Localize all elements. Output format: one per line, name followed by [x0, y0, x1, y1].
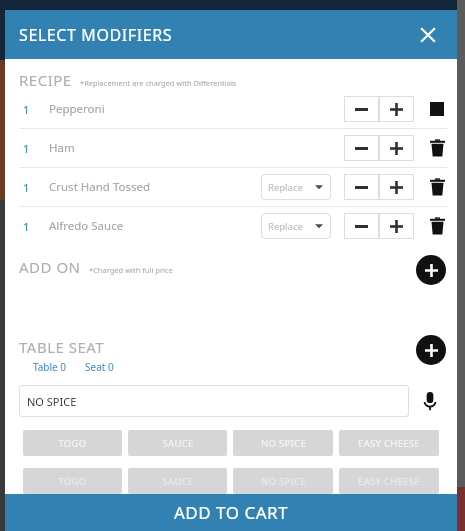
staticText: Ham — [49, 140, 75, 156]
button[interactable]: Voice input — [417, 388, 443, 414]
staticText: 1 — [23, 180, 30, 195]
staticText: Replace — [268, 181, 303, 194]
staticText: 1 — [23, 141, 30, 156]
button[interactable]: Delete Crust Hand Tossed — [427, 174, 447, 200]
button[interactable]: SELECT MODIFIERS — [5, 10, 457, 59]
button[interactable]: Replace — [261, 174, 331, 200]
staticText: EASY CHEESE — [358, 437, 420, 450]
button[interactable]: Close — [413, 20, 443, 50]
button[interactable]: TOGO — [23, 430, 122, 456]
button[interactable]: 1 — [5, 129, 457, 167]
staticText: TOGO — [58, 475, 87, 488]
staticText: SAUCE — [162, 475, 194, 488]
staticText: Replace — [268, 220, 303, 233]
button[interactable]: Increase — [379, 135, 414, 161]
button[interactable]: 1 — [5, 207, 457, 245]
staticText: NO SPICE — [261, 475, 306, 488]
staticText: EASY CHEESE — [358, 475, 420, 488]
button[interactable]: Increase — [379, 213, 414, 239]
staticText: ADD TO CART — [174, 501, 289, 524]
button[interactable]: Add table seat — [416, 335, 446, 365]
button[interactable]: Delete Ham — [427, 135, 447, 161]
staticText: RECIPE — [19, 70, 72, 90]
button[interactable]: Decrease — [344, 213, 379, 239]
staticText: *Charged with full price — [89, 265, 173, 275]
button[interactable]: NO SPICE — [233, 468, 333, 494]
staticText: Table 0 — [33, 360, 67, 374]
button[interactable]: Replace — [261, 213, 331, 239]
staticText: Seat 0 — [85, 360, 114, 374]
button[interactable]: Decrease — [344, 96, 379, 122]
button[interactable]: Delete Pepperoni — [427, 96, 447, 122]
staticText: SELECT MODIFIERS — [19, 24, 173, 46]
button[interactable]: EASY CHEESE — [339, 468, 439, 494]
staticText: SAUCE — [162, 437, 194, 450]
button[interactable]: NO SPICE — [233, 430, 333, 456]
button[interactable]: Table 0 — [33, 360, 67, 374]
staticText: TABLE SEAT — [19, 337, 105, 357]
staticText: Crust Hand Tossed — [49, 179, 151, 195]
button[interactable]: Delete Alfredo Sauce — [427, 213, 447, 239]
staticText: Pepperoni — [49, 101, 105, 117]
button[interactable]: ADD TO CART — [5, 494, 457, 531]
button[interactable]: 1 — [5, 168, 457, 206]
button[interactable]: Increase — [379, 174, 414, 200]
button[interactable]: EASY CHEESE — [339, 430, 439, 456]
button[interactable]: SAUCE — [128, 430, 227, 456]
button[interactable]: NO SPICE — [19, 385, 409, 417]
staticText: *Replacement are charged with Differenti… — [80, 78, 237, 88]
staticText: NO SPICE — [27, 394, 77, 409]
staticText: TOGO — [58, 437, 87, 450]
staticText: ADD ON — [19, 257, 81, 277]
staticText: Alfredo Sauce — [49, 218, 124, 234]
button[interactable]: Increase — [379, 96, 414, 122]
staticText: 1 — [23, 102, 30, 117]
button[interactable]: 1 — [5, 90, 457, 128]
button[interactable]: Add on — [416, 255, 446, 285]
button[interactable]: Seat 0 — [85, 360, 114, 374]
button[interactable]: Decrease — [344, 174, 379, 200]
button[interactable]: Decrease — [344, 135, 379, 161]
staticText: 1 — [23, 219, 30, 234]
staticText: NO SPICE — [261, 437, 306, 450]
